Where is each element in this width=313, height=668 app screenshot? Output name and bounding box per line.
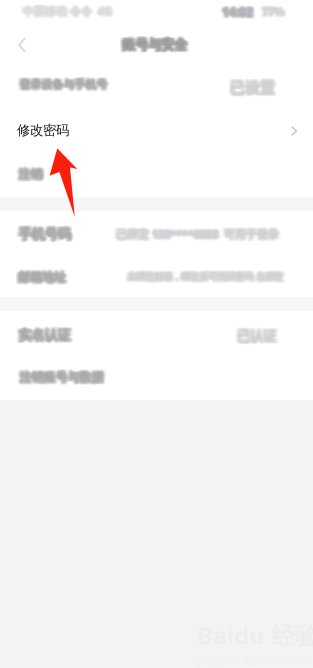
staticText: 中国移动 令令 4G [20, 5, 109, 19]
staticText: 实名认证 [16, 325, 68, 341]
staticText: 注销 [17, 169, 41, 184]
staticText: 手机号码 [16, 224, 68, 240]
staticText: 邮箱地址 [18, 271, 66, 286]
staticText: 注销 [17, 165, 41, 179]
staticText: 中国移动 令令 4G [24, 2, 113, 16]
staticText: 14:02 [225, 5, 256, 21]
staticText: 中国移动 令令 4G [26, 2, 115, 16]
staticText: 14:02 [225, 2, 256, 18]
button[interactable]: 邮箱地址 [0, 0, 313, 43]
staticText: 登录设备与手机号 [17, 80, 105, 93]
staticText: 注销 [16, 167, 40, 182]
staticText: 14:02 [222, 4, 253, 20]
staticText: 注销 [18, 166, 42, 181]
staticText: 已绑定 138****8888 可用于登录 [113, 227, 276, 241]
staticText: 14:02 [223, 3, 254, 19]
staticText: 手机号码 [16, 228, 68, 245]
staticText: 14:02 [225, 6, 256, 22]
staticText: 账号与安全 [119, 35, 184, 52]
staticText: 已设置 [230, 77, 275, 95]
staticText: 已绑定 138****8888 可用于登录 [116, 228, 279, 242]
staticText: 77% [259, 2, 281, 16]
staticText: 实名认证 [21, 329, 73, 346]
staticText: 未绑定邮箱，绑定后可找回密码 去绑定 [128, 271, 284, 282]
staticText: 已设置 [230, 81, 275, 99]
staticText: 实名认证 [18, 325, 70, 341]
staticText: 已绑定 138****8888 可用于登录 [116, 226, 279, 240]
staticText: 已绑定 138****8888 可用于登录 [115, 225, 278, 239]
button[interactable]: 修改密码 [0, 0, 313, 43]
button[interactable]: 实名认证 [0, 0, 313, 44]
staticText: 已认证 [238, 326, 277, 342]
staticText: 登录设备与手机号 [17, 78, 105, 91]
staticText: 注销 [20, 168, 44, 183]
staticText: 手机号码 [21, 227, 73, 243]
staticText: 登录设备与手机号 [17, 79, 105, 92]
staticText: 已认证 [240, 329, 279, 345]
staticText: 邮箱地址 [17, 269, 65, 284]
staticText: 登录设备与手机号 [22, 79, 110, 92]
staticText: 14:02 [221, 6, 252, 22]
staticText: 手机号码 [18, 228, 70, 245]
button[interactable]: 注销账号与数据 [0, 0, 313, 45]
staticText: 已认证 [237, 326, 276, 342]
staticText: 注销账号与数据 [18, 369, 102, 384]
staticText: 账号与安全 [123, 34, 188, 51]
staticText: 14:02 [223, 6, 254, 22]
staticText: 账号与安全 [122, 38, 187, 54]
staticText: 注销 [16, 166, 40, 181]
staticText: 未绑定邮箱，绑定后可找回密码 去绑定 [124, 269, 280, 280]
staticText: 中国移动 令令 4G [24, 4, 113, 18]
staticText: 未绑定邮箱，绑定后可找回密码 去绑定 [128, 269, 284, 280]
staticText: 77% [263, 2, 285, 16]
staticText: 已认证 [237, 329, 276, 345]
staticText: 实名认证 [16, 326, 68, 342]
staticText: 未绑定邮箱，绑定后可找回密码 去绑定 [126, 270, 282, 281]
staticText: 已认证 [238, 327, 277, 343]
staticText: 已认证 [234, 327, 273, 343]
staticText: 手机号码 [18, 225, 70, 241]
staticText: 已绑定 138****8888 可用于登录 [115, 229, 278, 243]
staticText: 中国移动 令令 4G [23, 6, 112, 20]
staticText: 14:02 [223, 4, 254, 20]
staticText: 已认证 [238, 330, 277, 347]
staticText: 已绑定 138****8888 可用于登录 [116, 225, 279, 239]
staticText: 手机号码 [20, 228, 72, 245]
staticText: 账号与安全 [121, 36, 186, 53]
staticText: 中国移动 令令 4G [22, 5, 111, 19]
staticText: 注销 [17, 168, 41, 183]
button[interactable]: 手机号码 [0, 0, 313, 43]
staticText: 手机号码 [17, 225, 69, 241]
button[interactable]: 注销 [0, 0, 313, 45]
staticText: 未绑定邮箱，绑定后可找回密码 去绑定 [124, 270, 280, 281]
staticText: 14:02 [219, 3, 250, 19]
staticText: 账号与安全 [123, 39, 188, 55]
staticText: 实名认证 [16, 329, 68, 346]
staticText: 14:02 [219, 6, 250, 22]
staticText: 登录设备与手机号 [21, 76, 109, 89]
staticText: 注销账号与数据 [19, 368, 103, 382]
staticText: 已认证 [236, 327, 275, 343]
staticText: 未绑定邮箱，绑定后可找回密码 去绑定 [127, 273, 283, 285]
staticText: 账号与安全 [121, 38, 186, 54]
staticText: 账号与安全 [121, 39, 186, 55]
staticText: 已绑定 138****8888 可用于登录 [115, 228, 278, 242]
staticText: 登录设备与手机号 [21, 77, 109, 90]
staticText: 中国移动 令令 4G [23, 2, 112, 16]
staticText: 实名认证 [17, 328, 69, 344]
button[interactable]: 登录设备与手机号 [0, 0, 313, 44]
staticText: 手机号码 [17, 224, 69, 240]
staticText: 邮箱地址 [18, 272, 66, 287]
button[interactable]: Back [0, 0, 44, 36]
staticText: 注销 [21, 168, 45, 183]
staticText: 77% [262, 4, 284, 19]
staticText: 已设置 [230, 79, 275, 97]
staticText: 注销 [20, 167, 44, 182]
staticText: 已认证 [240, 326, 279, 342]
staticText: 77% [263, 4, 285, 19]
staticText: 注销账号与数据 [18, 370, 102, 385]
staticText: 已认证 [234, 329, 273, 345]
staticText: 已设置 [227, 81, 272, 99]
